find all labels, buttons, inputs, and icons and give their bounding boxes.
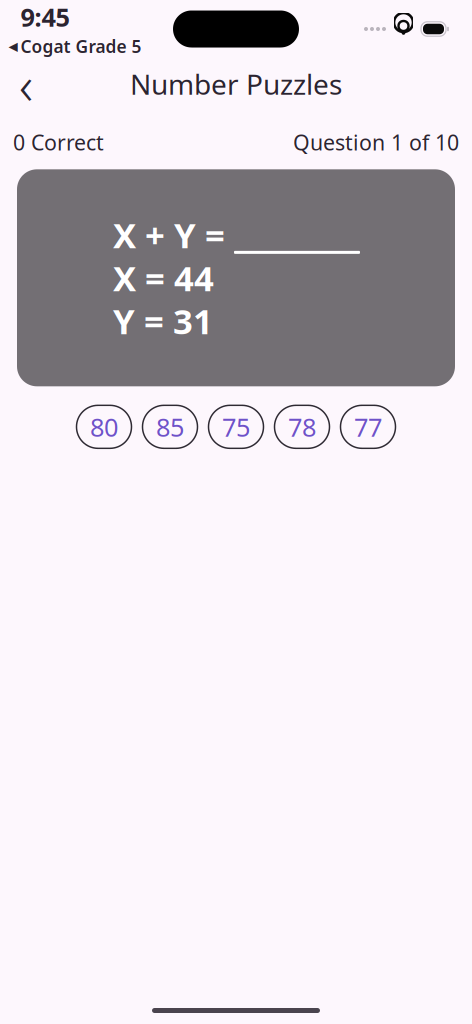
staticText: ◀ bbox=[8, 39, 17, 53]
staticText: 80 bbox=[90, 410, 118, 444]
staticText: Number Puzzles bbox=[130, 65, 342, 103]
staticText: X = 44 bbox=[113, 255, 214, 301]
staticText: 85 bbox=[156, 410, 184, 444]
button[interactable]: 85 bbox=[142, 405, 197, 448]
staticText: 0 Correct bbox=[13, 128, 104, 156]
button[interactable]: 75 bbox=[208, 405, 263, 448]
staticText: 9:45 bbox=[20, 0, 69, 34]
staticText: Question 1 of 10 bbox=[293, 128, 459, 156]
button[interactable]: Back bbox=[0, 62, 52, 106]
button[interactable]: 80 bbox=[76, 405, 131, 448]
staticText: ‹ bbox=[19, 49, 33, 119]
staticText: 77 bbox=[354, 410, 382, 444]
staticText: Cogat Grade 5 bbox=[20, 35, 141, 58]
button[interactable]: 77 bbox=[340, 405, 395, 448]
staticText: 78 bbox=[288, 410, 316, 444]
staticText: X + Y = bbox=[113, 212, 225, 258]
button[interactable]: 78 bbox=[274, 405, 329, 448]
staticText: 75 bbox=[222, 410, 250, 444]
button[interactable]: ◀ bbox=[8, 35, 141, 58]
staticText: Y = 31 bbox=[113, 298, 213, 344]
